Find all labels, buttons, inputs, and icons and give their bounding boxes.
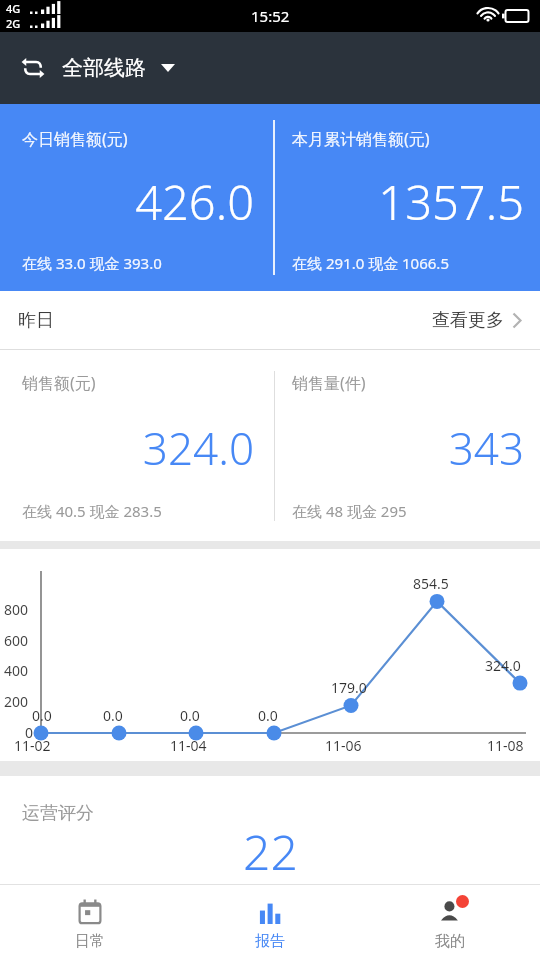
staticText: 11-06 bbox=[325, 736, 362, 755]
staticText: 11-08 bbox=[487, 736, 524, 755]
staticText: 343 bbox=[292, 418, 524, 478]
staticText: 11-02 bbox=[14, 736, 51, 755]
staticText: 1357.5 bbox=[292, 170, 524, 234]
staticText: 800 bbox=[4, 600, 29, 619]
staticText: 报告 bbox=[255, 932, 285, 951]
staticText: 15:52 bbox=[251, 6, 290, 26]
staticText: 今日销售额(元) bbox=[22, 128, 128, 150]
button[interactable]: Switch route bbox=[20, 49, 185, 87]
staticText: 426.0 bbox=[22, 170, 254, 234]
staticText: 在线 40.5 现金 283.5 bbox=[22, 501, 162, 521]
staticText: 2G bbox=[6, 16, 21, 31]
staticText: 0.0 bbox=[258, 706, 278, 725]
other: Report bbox=[258, 900, 282, 924]
staticText: 324.0 bbox=[485, 656, 521, 675]
button[interactable]: Report bbox=[180, 885, 360, 960]
staticText: 昨日 bbox=[18, 309, 54, 332]
button[interactable]: 销售额(元) bbox=[0, 350, 270, 541]
staticText: 在线 33.0 现金 393.0 bbox=[22, 253, 162, 273]
staticText: 200 bbox=[4, 692, 29, 711]
staticText: 在线 291.0 现金 1066.5 bbox=[292, 253, 449, 273]
other: Switch route bbox=[20, 55, 46, 81]
staticText: 4G bbox=[6, 1, 21, 16]
button[interactable]: Daily bbox=[0, 885, 180, 960]
staticText: 324.0 bbox=[22, 418, 254, 478]
button[interactable]: 昨日 bbox=[0, 291, 540, 349]
button[interactable]: 销售量(件) bbox=[270, 350, 540, 541]
staticText: 本月累计销售额(元) bbox=[292, 128, 430, 150]
staticText: 全部线路 bbox=[62, 55, 146, 81]
other: Daily bbox=[77, 899, 103, 925]
staticText: 查看更多 bbox=[432, 309, 504, 332]
other: Mine bbox=[436, 898, 464, 926]
button[interactable]: Mine bbox=[360, 885, 540, 960]
staticText: 在线 48 现金 295 bbox=[292, 501, 407, 521]
button[interactable]: 今日销售额(元) bbox=[0, 104, 270, 291]
staticText: 179.0 bbox=[331, 678, 367, 697]
staticText: 0.0 bbox=[32, 706, 52, 725]
staticText: 854.5 bbox=[413, 574, 449, 593]
staticText: 11-04 bbox=[170, 736, 207, 755]
staticText: 0.0 bbox=[103, 706, 123, 725]
staticText: 我的 bbox=[435, 932, 465, 951]
staticText: 0.0 bbox=[180, 706, 200, 725]
staticText: 销售额(元) bbox=[22, 372, 96, 394]
staticText: 运营评分 bbox=[22, 802, 94, 825]
button[interactable]: 本月累计销售额(元) bbox=[270, 104, 540, 291]
staticText: 日常 bbox=[75, 932, 105, 951]
staticText: 22 bbox=[243, 819, 298, 884]
staticText: 600 bbox=[4, 631, 29, 650]
staticText: 销售量(件) bbox=[292, 372, 366, 394]
staticText: 0 bbox=[25, 723, 34, 742]
staticText: 400 bbox=[4, 661, 29, 680]
